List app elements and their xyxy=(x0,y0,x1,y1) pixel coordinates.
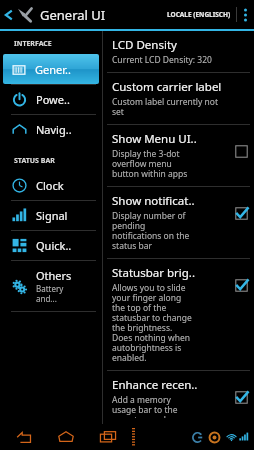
button[interactable]: Custom carrier label xyxy=(103,73,254,124)
button[interactable]: LOCALE (ENGLISCH) xyxy=(162,4,236,25)
staticText: LCD Density xyxy=(112,37,177,53)
staticText: STATUS BAR xyxy=(14,156,55,166)
button[interactable]: More options xyxy=(237,3,254,27)
staticText: Show notificat.. xyxy=(112,193,195,209)
button[interactable]: Show Menu UI.. xyxy=(103,125,254,186)
staticText: Add a memory usage bar to the recents pa… xyxy=(112,394,178,418)
staticText: INTERFACE xyxy=(14,39,52,49)
button[interactable]: Navig.. xyxy=(0,115,102,144)
staticText: Quick.. xyxy=(36,238,72,253)
button[interactable]: Signal xyxy=(0,201,102,230)
button[interactable]: Others xyxy=(0,261,102,311)
button[interactable]: LCD Density xyxy=(103,31,254,72)
staticText: Current LCD Density: 320 xyxy=(112,54,212,66)
staticText: Clock xyxy=(36,178,64,193)
button[interactable]: Show notificat.. xyxy=(103,187,254,258)
staticText: Custom carrier label xyxy=(112,79,222,95)
staticText: General UI xyxy=(40,6,106,24)
staticText: Signal xyxy=(36,208,68,223)
staticText: Others xyxy=(36,268,72,283)
staticText: Battery and... xyxy=(36,283,64,304)
staticText: Display number of pending notifications … xyxy=(112,210,190,252)
button[interactable]: Powe.. xyxy=(0,85,102,114)
button[interactable]: Clock xyxy=(0,171,102,200)
button[interactable]: Navigate up xyxy=(0,2,35,27)
staticText: Allows you to slide your finger along th… xyxy=(112,282,192,364)
staticText: Display the 3-dot overflow menu button w… xyxy=(112,148,188,180)
button[interactable]: Gener.. xyxy=(3,54,99,84)
staticText: Navig.. xyxy=(36,122,72,137)
staticText: Gener.. xyxy=(35,62,71,77)
button[interactable]: Quick.. xyxy=(0,231,102,260)
button[interactable]: Enhance recen.. xyxy=(103,371,254,424)
button[interactable]: Home xyxy=(50,427,82,447)
button[interactable]: Recents xyxy=(92,427,124,447)
button[interactable]: Back xyxy=(8,427,40,447)
staticText: Custom label currently not set xyxy=(112,96,218,118)
staticText: LOCALE (ENGLISCH) xyxy=(167,10,231,19)
staticText: Statusbar brig.. xyxy=(112,265,195,281)
button[interactable]: Statusbar brig.. xyxy=(103,259,254,370)
staticText: Powe.. xyxy=(36,92,70,107)
staticText: Show Menu UI.. xyxy=(112,131,197,147)
staticText: Enhance recen.. xyxy=(112,377,198,393)
